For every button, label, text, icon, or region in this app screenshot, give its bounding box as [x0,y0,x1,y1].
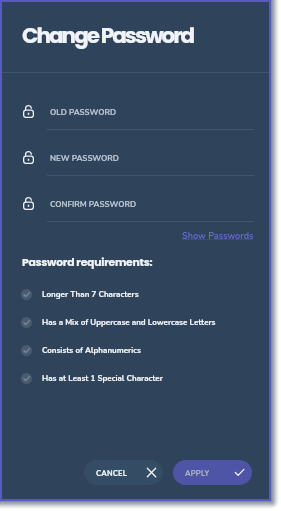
button[interactable]: Consists of Alphanumerics [2,338,269,362]
button[interactable]: APPLY [173,460,252,485]
staticText: Has at Least 1 Special Character [42,373,163,384]
staticText: CANCEL [96,468,128,478]
button[interactable]: OLD PASSWORD [2,100,269,133]
staticText: Consists of Alphanumerics [42,345,141,356]
staticText: Show Passwords [182,230,254,242]
button[interactable]: NEW PASSWORD [2,146,269,179]
button[interactable]: CONFIRM PASSWORD [2,192,269,225]
staticText: OLD PASSWORD [50,107,117,118]
staticText: Change Password [22,20,194,50]
staticText: Longer Than 7 Characters [42,289,139,300]
button[interactable]: Longer Than 7 Characters [2,282,269,306]
staticText: Has a Mix of Uppercase and Lowercase Let… [42,317,216,328]
button[interactable]: Show Passwords [178,228,258,244]
button[interactable]: Has a Mix of Uppercase and Lowercase Let… [2,310,269,334]
button[interactable]: CANCEL [84,460,163,485]
staticText: Password requirements: [22,255,153,270]
staticText: NEW PASSWORD [50,153,119,164]
staticText: APPLY [185,468,210,478]
button[interactable]: Has at Least 1 Special Character [2,366,269,390]
staticText: CONFIRM PASSWORD [50,199,137,210]
